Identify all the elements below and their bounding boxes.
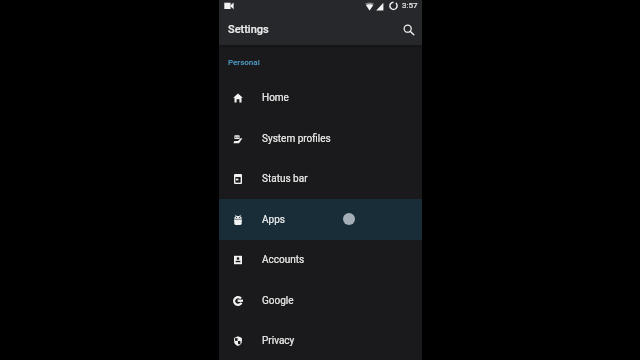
staticText: Privacy [262, 335, 295, 347]
button[interactable]: Google [219, 280, 422, 321]
button[interactable]: Home [219, 77, 422, 118]
button[interactable]: Privacy [219, 320, 422, 360]
staticText: System profiles [262, 133, 331, 145]
button[interactable]: Apps [219, 199, 422, 240]
staticText: Google [262, 295, 294, 307]
staticText: Status bar [262, 173, 308, 185]
staticText: Home [262, 92, 289, 104]
staticText: 3:57 [402, 1, 418, 10]
button[interactable]: System profiles [219, 118, 422, 159]
staticText: Apps [262, 214, 285, 226]
button[interactable]: Status bar [219, 158, 422, 199]
button[interactable]: Accounts [219, 239, 422, 280]
staticText: Settings [228, 23, 269, 36]
staticText: Personal [228, 58, 260, 67]
button[interactable]: Search [398, 19, 419, 40]
staticText: Accounts [262, 254, 305, 266]
